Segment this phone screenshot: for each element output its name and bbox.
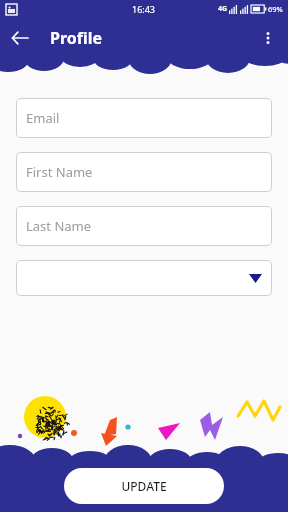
staticText: 4G xyxy=(218,4,228,14)
button[interactable]: UPDATE xyxy=(64,468,224,504)
button[interactable]: First Name xyxy=(16,152,272,192)
button[interactable]: Last Name xyxy=(16,206,272,246)
staticText: UPDATE xyxy=(121,478,167,494)
staticText: 69% xyxy=(268,4,283,14)
staticText: First Name xyxy=(26,163,93,181)
button[interactable]: Select option xyxy=(16,260,272,296)
staticText: 16:43 xyxy=(132,3,156,15)
staticText: Last Name xyxy=(26,217,92,235)
button[interactable]: Back xyxy=(0,18,40,58)
button[interactable]: More options xyxy=(248,18,288,58)
staticText: Profile xyxy=(50,27,103,49)
staticText: Email xyxy=(26,109,60,127)
button[interactable]: Email xyxy=(16,98,272,138)
